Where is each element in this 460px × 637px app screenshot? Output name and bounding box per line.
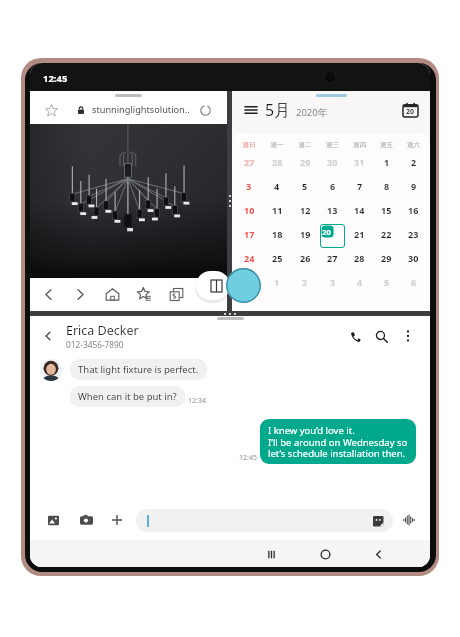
button[interactable]: Forward bbox=[70, 284, 91, 305]
button[interactable]: More options bbox=[397, 325, 419, 347]
button[interactable]: 28 bbox=[263, 152, 291, 176]
button[interactable]: 31 bbox=[235, 272, 263, 296]
button[interactable]: 24 bbox=[235, 248, 263, 272]
button[interactable]: 6 bbox=[319, 176, 346, 200]
staticText: 8 bbox=[384, 180, 390, 192]
staticText: 週三 bbox=[319, 141, 346, 149]
button[interactable]: 4 bbox=[263, 176, 291, 200]
button[interactable]: 31 bbox=[346, 152, 373, 176]
staticText: I knew you’d love it. I’ll be around on … bbox=[268, 424, 408, 459]
button[interactable]: 3 bbox=[319, 272, 346, 296]
button[interactable]: 21 bbox=[346, 224, 373, 248]
staticText: 11 bbox=[272, 204, 283, 216]
staticText: 5月 bbox=[265, 99, 291, 121]
staticText: 1 bbox=[384, 156, 390, 168]
button[interactable]: Reload bbox=[196, 101, 214, 119]
button[interactable]: 23 bbox=[400, 224, 427, 248]
button[interactable]: Menu bbox=[241, 100, 261, 120]
button[interactable]: Home bbox=[102, 284, 123, 305]
staticText: 週一 bbox=[263, 141, 291, 149]
button[interactable]: Camera bbox=[76, 510, 96, 530]
button[interactable]: 3 bbox=[235, 176, 263, 200]
button[interactable]: 29 bbox=[373, 248, 400, 272]
button[interactable]: Today bbox=[399, 99, 421, 121]
button[interactable]: 22 bbox=[373, 224, 400, 248]
staticText: 27 bbox=[244, 156, 255, 168]
button[interactable]: 30 bbox=[319, 152, 346, 176]
button[interactable]: Home bbox=[314, 543, 336, 565]
staticText: 1 bbox=[274, 276, 280, 288]
button[interactable]: That light fixture is perfect. bbox=[70, 359, 207, 380]
staticText: 10 bbox=[244, 204, 255, 216]
button[interactable]: Bookmarks bbox=[134, 284, 155, 305]
button[interactable]: 30 bbox=[400, 248, 427, 272]
button[interactable]: 1 bbox=[263, 272, 291, 296]
staticText: stunninglightsolution.. bbox=[92, 103, 190, 116]
button[interactable]: Stickers bbox=[370, 513, 386, 529]
button[interactable]: 12 bbox=[291, 200, 319, 224]
button[interactable]: Tabs bbox=[166, 284, 187, 305]
button[interactable]: 13 bbox=[319, 200, 346, 224]
button[interactable]: 16 bbox=[400, 200, 427, 224]
staticText: 20 bbox=[406, 107, 415, 117]
button[interactable]: Recent apps bbox=[260, 543, 282, 565]
staticText: 28 bbox=[354, 252, 365, 264]
button[interactable]: 14 bbox=[346, 200, 373, 224]
button[interactable]: 26 bbox=[291, 248, 319, 272]
button[interactable]: 6 bbox=[400, 272, 427, 296]
button[interactable]: 20 bbox=[319, 224, 346, 248]
button[interactable]: 18 bbox=[263, 224, 291, 248]
staticText: 28 bbox=[272, 156, 283, 168]
button[interactable]: 27 bbox=[235, 152, 263, 176]
button[interactable]: Back bbox=[38, 326, 58, 346]
button[interactable]: 1 bbox=[373, 152, 400, 176]
staticText: 25 bbox=[272, 252, 283, 264]
staticText: 7 bbox=[357, 180, 363, 192]
staticText: 29 bbox=[381, 252, 392, 264]
staticText: 週日 bbox=[235, 141, 263, 149]
button[interactable]: 19 bbox=[291, 224, 319, 248]
staticText: 2 bbox=[411, 156, 417, 168]
button[interactable]: When can it be put in? bbox=[70, 386, 185, 407]
button[interactable]: 4 bbox=[346, 272, 373, 296]
button[interactable]: 28 bbox=[346, 248, 373, 272]
button[interactable]: 27 bbox=[319, 248, 346, 272]
button[interactable]: Call bbox=[344, 325, 366, 347]
button[interactable]: Back bbox=[38, 284, 59, 305]
staticText: Erica Decker bbox=[66, 322, 139, 339]
button[interactable]: Voice message bbox=[399, 510, 419, 530]
button[interactable]: 7 bbox=[346, 176, 373, 200]
button[interactable]: 8 bbox=[373, 176, 400, 200]
staticText: That light fixture is perfect. bbox=[78, 363, 199, 376]
button[interactable]: Add bbox=[107, 510, 127, 530]
staticText: When can it be put in? bbox=[78, 390, 177, 403]
staticText: 16 bbox=[408, 204, 419, 216]
button[interactable]: Search bbox=[370, 325, 392, 347]
staticText: 31 bbox=[354, 156, 365, 168]
button[interactable]: 9 bbox=[400, 176, 427, 200]
button[interactable]: 2 bbox=[400, 152, 427, 176]
button[interactable]: I knew you’d love it. I’ll be around on … bbox=[260, 419, 416, 464]
staticText: 24 bbox=[244, 252, 255, 264]
button[interactable]: 2 bbox=[291, 272, 319, 296]
staticText: 30 bbox=[408, 252, 419, 264]
button[interactable]: Split screen bbox=[196, 271, 230, 300]
button[interactable]: 11 bbox=[263, 200, 291, 224]
button[interactable]: 5 bbox=[291, 176, 319, 200]
button[interactable]: Bookmark bbox=[41, 100, 61, 120]
button[interactable]: 5 bbox=[373, 272, 400, 296]
button[interactable]: 29 bbox=[291, 152, 319, 176]
button[interactable]: Back bbox=[367, 543, 389, 565]
staticText: 4 bbox=[357, 276, 363, 288]
button[interactable]: 15 bbox=[373, 200, 400, 224]
button[interactable]: 10 bbox=[235, 200, 263, 224]
staticText: 26 bbox=[300, 252, 311, 264]
staticText: 29 bbox=[300, 156, 311, 168]
button[interactable]: Stickers bbox=[136, 509, 393, 532]
button[interactable]: 25 bbox=[263, 248, 291, 272]
button[interactable]: 17 bbox=[235, 224, 263, 248]
button[interactable]: Gallery bbox=[43, 510, 63, 530]
staticText: 3 bbox=[246, 180, 252, 192]
staticText: 18 bbox=[272, 228, 283, 240]
